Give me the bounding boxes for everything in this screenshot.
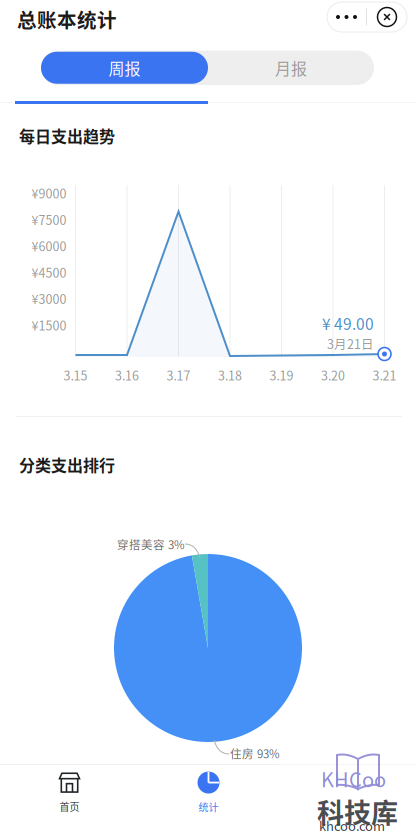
staticText: 3.18 [218, 366, 242, 384]
staticText: 3.15 [63, 366, 87, 384]
staticText: ¥9000 [31, 184, 66, 202]
staticText: KHCoo [321, 764, 386, 793]
staticText: 每日支出趋势 [19, 124, 115, 147]
staticText: ¥3000 [31, 289, 66, 308]
staticText: 3.19 [269, 366, 293, 384]
staticText: 周报 [108, 56, 140, 79]
button[interactable]: 统计 [139, 765, 278, 821]
button[interactable]: 周报 [41, 52, 208, 84]
staticText: ¥ 49.00 [322, 312, 374, 334]
staticText: ¥7500 [31, 210, 66, 228]
button[interactable]: More [327, 2, 366, 32]
staticText: 统计 [198, 800, 218, 814]
staticText: 住房 93% [230, 745, 280, 762]
staticText: ¥1500 [31, 316, 66, 334]
staticText: 3.17 [166, 366, 190, 384]
staticText: 3.20 [321, 366, 345, 384]
staticText: ¥4500 [31, 263, 66, 281]
staticText: 分类支出排行 [19, 453, 115, 476]
staticText: 3.21 [372, 366, 396, 384]
button[interactable]: 首页 [0, 765, 139, 821]
staticText: ¥6000 [31, 237, 66, 255]
staticText: 月报 [275, 56, 307, 79]
staticText: khcoo.com [319, 816, 385, 832]
button[interactable]: Close [367, 2, 407, 32]
staticText: 首页 [59, 799, 79, 814]
staticText: 穿搭美容 3% [117, 536, 185, 553]
staticText: 3月21日 [327, 334, 374, 352]
staticText: 3.16 [115, 366, 139, 384]
button[interactable]: 月报 [208, 52, 374, 84]
staticText: 科技库 [317, 792, 398, 831]
staticText: 总账本统计 [17, 5, 117, 33]
